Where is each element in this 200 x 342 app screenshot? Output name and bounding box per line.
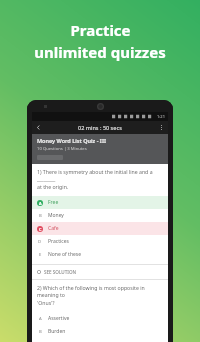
staticText: 1:21 [157,114,165,119]
button[interactable]: D [32,235,168,248]
staticText: unlimited quizzes [34,42,166,62]
staticText: Assertive [48,315,70,322]
staticText: 1) There is symmetry about the initial l… [37,168,163,191]
staticText: Practice [70,20,131,40]
staticText: 2) Which of the following is most opposi… [37,284,163,307]
button[interactable]: SEE SOLUTION [32,265,168,279]
staticText: SEE SOLUTION [44,269,77,275]
staticText: Money [48,212,64,219]
staticText: C [39,227,42,232]
button[interactable]: A [32,196,168,209]
staticText: A [39,316,42,322]
staticText: B [39,329,42,335]
staticText: 10 Questions | 3 Minutes [37,146,87,152]
button[interactable]: Back [32,121,45,134]
staticText: Practices [48,238,69,245]
staticText: A [39,201,42,206]
button[interactable]: E [32,248,168,261]
staticText: None of these [48,251,82,258]
staticText: 02 mins : 50 secs [78,124,122,131]
button[interactable]: B [32,325,168,338]
staticText: E [39,252,42,258]
button[interactable]: A [32,312,168,325]
staticText: Cafe [48,225,59,232]
staticText: Burden [48,328,66,335]
staticText: D [38,239,42,245]
button[interactable]: More options [155,121,168,134]
staticText: B [39,213,42,219]
staticText: Free [48,199,59,206]
staticText: Money Word List Quiz - III [37,137,106,144]
button[interactable]: B [32,209,168,222]
button[interactable]: C [32,222,168,235]
